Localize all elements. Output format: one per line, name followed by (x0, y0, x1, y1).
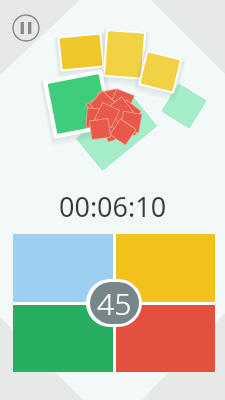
button[interactable] (116, 305, 215, 372)
staticText: 00:06:10 (59, 188, 167, 225)
button[interactable] (13, 305, 113, 372)
button[interactable]: Pause (12, 14, 40, 42)
button[interactable] (13, 234, 113, 302)
button[interactable] (116, 234, 215, 302)
staticText: 45 (97, 283, 132, 324)
